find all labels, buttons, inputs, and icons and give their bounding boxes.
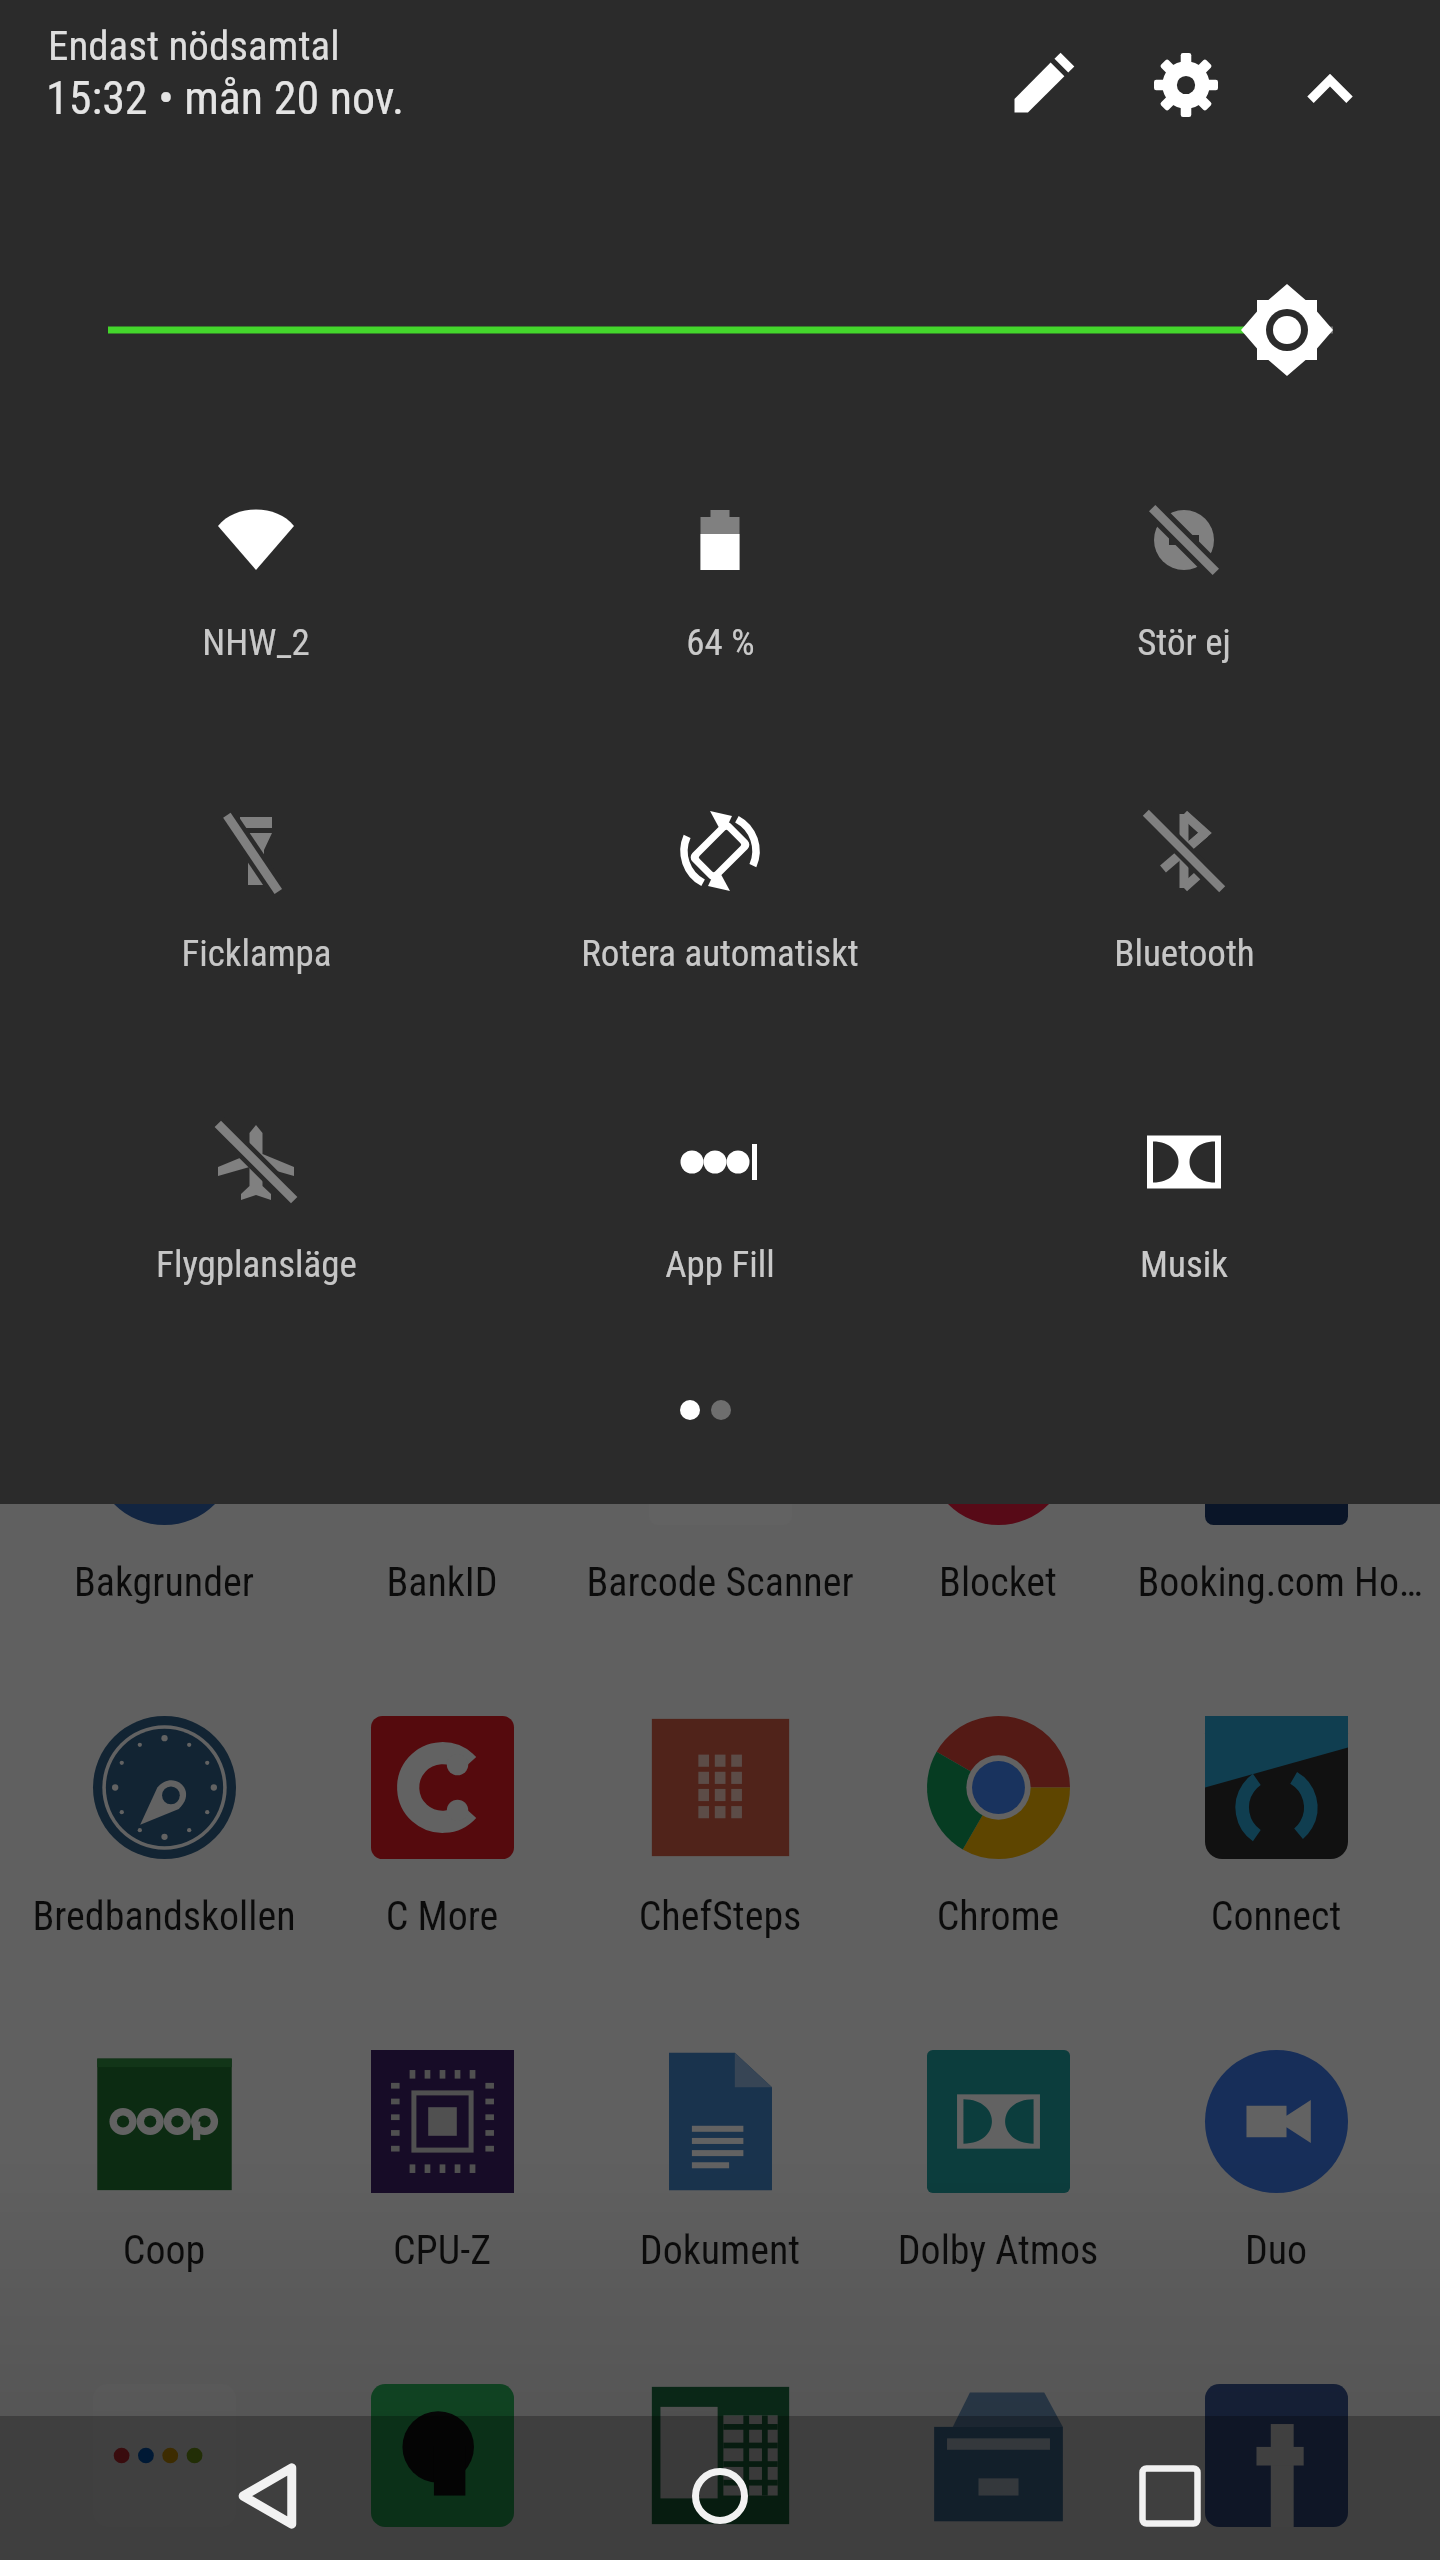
button[interactable]: Rotera automatiskt xyxy=(488,787,952,1003)
button[interactable]: Edit xyxy=(994,37,1090,133)
button[interactable]: Booking.com Ho… xyxy=(1137,1382,1415,1606)
staticText: Endast nödsamtal xyxy=(48,22,340,70)
staticText: Ficklampa xyxy=(181,932,332,975)
button[interactable]: Settings xyxy=(1138,37,1234,133)
button[interactable]: Blocket xyxy=(859,1382,1137,1606)
button[interactable]: 64 % xyxy=(488,476,952,692)
button[interactable]: Musik xyxy=(952,1098,1416,1314)
staticText: App Fill xyxy=(665,1243,775,1286)
button[interactable]: Barcode Scanner xyxy=(581,1382,859,1606)
staticText: NHW_2 xyxy=(202,621,310,664)
staticText: Chrome xyxy=(859,1893,1137,1940)
staticText: Dokument xyxy=(581,2227,859,2274)
button[interactable]: C More xyxy=(303,1716,581,1940)
button[interactable]: Evernote xyxy=(303,2384,581,2560)
staticText: Coop xyxy=(25,2227,303,2274)
staticText: 64 % xyxy=(686,621,755,664)
button[interactable]: ebay xyxy=(25,2384,303,2560)
staticText: Dolby Atmos xyxy=(859,2227,1137,2274)
staticText: Barcode Scanner xyxy=(581,1559,859,1606)
button[interactable]: Collapse xyxy=(1282,37,1378,133)
button[interactable]: Connect xyxy=(1137,1716,1415,1940)
staticText: 15:32 • mån 20 nov. xyxy=(46,71,405,125)
button[interactable]: Recents xyxy=(1090,2416,1250,2560)
staticText: Stör ej xyxy=(1137,621,1231,664)
button[interactable]: Facebook xyxy=(1137,2384,1415,2560)
button[interactable]: BankID xyxy=(303,1382,581,1606)
button[interactable]: Bakgrunder xyxy=(25,1382,303,1606)
button[interactable]: Brightness xyxy=(0,270,1440,390)
staticText: CPU-Z xyxy=(303,2227,581,2274)
button[interactable]: Bredbandskollen xyxy=(25,1716,303,1940)
staticText: Rotera automatiskt xyxy=(581,932,859,975)
button[interactable]: Chrome xyxy=(859,1716,1137,1940)
staticText: Bakgrunder xyxy=(25,1559,303,1606)
staticText: Booking.com Ho… xyxy=(1137,1559,1415,1606)
button[interactable]: Filer xyxy=(859,2384,1137,2560)
staticText: BankID xyxy=(303,1559,581,1606)
button[interactable]: Bluetooth xyxy=(952,787,1416,1003)
staticText: C More xyxy=(303,1893,581,1940)
button[interactable]: Coop xyxy=(25,2050,303,2274)
button[interactable]: ChefSteps xyxy=(581,1716,859,1940)
staticText: Musik xyxy=(1140,1243,1228,1286)
button[interactable]: Dokument xyxy=(581,2050,859,2274)
staticText: Bredbandskollen xyxy=(25,1893,303,1940)
button[interactable]: Ficklampa xyxy=(24,787,488,1003)
staticText: ChefSteps xyxy=(581,1893,859,1940)
staticText: Connect xyxy=(1137,1893,1415,1940)
button[interactable]: Stör ej xyxy=(952,476,1416,692)
button[interactable]: App Fill xyxy=(488,1098,952,1314)
button[interactable]: Back xyxy=(190,2416,350,2560)
button[interactable]: NHW_2 xyxy=(24,476,488,692)
button[interactable]: Dolby Atmos xyxy=(859,2050,1137,2274)
staticText: Bluetooth xyxy=(1114,932,1255,975)
staticText: Blocket xyxy=(859,1559,1137,1606)
staticText: Flygplansläge xyxy=(156,1243,357,1286)
button[interactable]: Duo xyxy=(1137,2050,1415,2274)
staticText: Duo xyxy=(1137,2227,1415,2274)
button[interactable]: Flygplansläge xyxy=(24,1098,488,1314)
button[interactable]: CPU-Z xyxy=(303,2050,581,2274)
button[interactable]: Home xyxy=(640,2416,800,2560)
button[interactable]: Excel xyxy=(581,2384,859,2560)
